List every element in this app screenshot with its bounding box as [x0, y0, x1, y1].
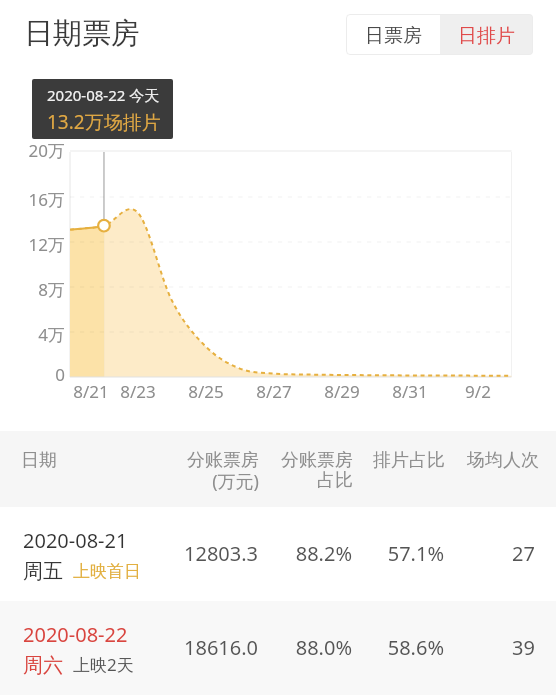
staticText: 上映2天	[73, 653, 134, 676]
staticText: 8万	[5, 278, 65, 301]
staticText: 13.2万场排片	[47, 109, 161, 135]
staticText: 88.0%	[172, 634, 352, 661]
staticText: 8/27	[239, 380, 309, 403]
staticText: 88.2%	[172, 540, 352, 567]
staticText: 16万	[5, 188, 65, 211]
staticText: 占比	[173, 469, 353, 492]
staticText: 日票房	[365, 24, 422, 48]
staticText: 2020-08-22	[23, 621, 128, 648]
staticText: 日排片	[458, 24, 515, 48]
staticText: 分账票房	[79, 449, 259, 472]
staticText: 日期	[21, 449, 57, 472]
staticText: 12万	[5, 233, 65, 256]
staticText: 周五	[23, 559, 63, 584]
staticText: 上映首日	[73, 561, 141, 582]
staticText: 排片占比	[265, 449, 445, 472]
staticText: 0	[5, 363, 65, 386]
staticText: 8/23	[103, 380, 173, 403]
button[interactable]: 2020-08-21	[0, 507, 556, 601]
staticText: 分账票房	[173, 449, 353, 472]
staticText: 20万	[5, 139, 65, 162]
staticText: 2020-08-22 今天	[47, 85, 160, 105]
staticText: 9/2	[443, 380, 513, 403]
staticText: 8/21	[56, 380, 126, 403]
staticText: 27	[355, 540, 535, 567]
staticText: 4万	[5, 323, 65, 346]
staticText: 18616.0	[78, 634, 258, 661]
staticText: 58.6%	[264, 634, 444, 661]
staticText: (万元)	[79, 469, 259, 494]
button[interactable]: 日排片	[440, 14, 533, 55]
staticText: 2020-08-21	[23, 527, 128, 554]
staticText: 39	[355, 634, 535, 661]
button[interactable]: 日票房	[346, 14, 440, 55]
staticText: 8/31	[375, 380, 445, 403]
staticText: 57.1%	[264, 540, 444, 567]
button[interactable]: 2020-08-22	[0, 601, 556, 695]
staticText: 8/29	[307, 380, 377, 403]
staticText: 8/25	[171, 380, 241, 403]
staticText: 日期票房	[24, 15, 140, 52]
staticText: 周六	[23, 653, 63, 678]
staticText: 场均人次	[359, 449, 539, 472]
staticText: 12803.3	[78, 540, 258, 567]
